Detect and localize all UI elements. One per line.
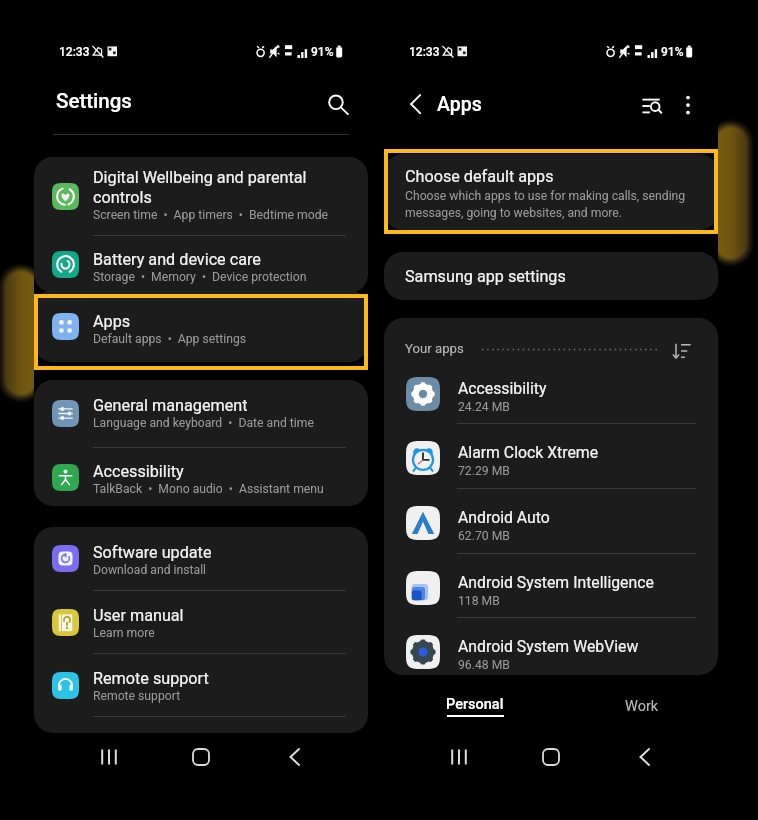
- button[interactable]: Android Auto: [384, 493, 718, 553]
- button[interactable]: Recents: [88, 736, 130, 778]
- staticText: 72.29 MB: [458, 464, 510, 478]
- staticText: Your apps: [405, 341, 464, 356]
- button[interactable]: Software update: [34, 527, 368, 590]
- button[interactable]: Samsung app settings: [384, 252, 718, 300]
- staticText: Battery and device care: [93, 250, 261, 269]
- button[interactable]: Sort: [670, 339, 694, 363]
- button[interactable]: User manual: [34, 591, 368, 653]
- staticText: 118 MB: [458, 594, 500, 608]
- button[interactable]: Alarm Clock Xtreme: [384, 428, 718, 488]
- staticText: Accessibility: [458, 379, 547, 398]
- staticText: 91%: [311, 45, 334, 59]
- staticText: 96.48 MB: [458, 658, 510, 672]
- staticText: Software update: [93, 543, 212, 562]
- staticText: 24.24 MB: [458, 400, 510, 414]
- button[interactable]: General management: [34, 380, 368, 447]
- staticText: 62.70 MB: [458, 529, 510, 543]
- staticText: Android Auto: [458, 508, 550, 527]
- button[interactable]: Back: [623, 736, 665, 778]
- button[interactable]: Back: [273, 736, 315, 778]
- staticText: Screen time • App timers • Bedtime mode: [93, 208, 329, 222]
- staticText: Choose which apps to use for making call…: [405, 189, 686, 220]
- staticText: Alarm Clock Xtreme: [458, 443, 599, 462]
- button[interactable]: Apps: [34, 298, 368, 355]
- button[interactable]: Choose default apps: [384, 154, 718, 230]
- button[interactable]: Android System WebView: [384, 622, 718, 675]
- staticText: Work: [625, 698, 659, 715]
- staticText: Default apps • App settings: [93, 332, 247, 346]
- staticText: User manual: [93, 606, 184, 625]
- button[interactable]: Search: [321, 88, 355, 122]
- button[interactable]: Accessibility: [384, 364, 718, 424]
- staticText: 12:33: [59, 45, 90, 59]
- staticText: Choose default apps: [405, 167, 554, 186]
- staticText: Remote support: [93, 669, 209, 688]
- staticText: Language and keyboard • Date and time: [93, 416, 314, 430]
- button[interactable]: Home: [180, 736, 222, 778]
- button[interactable]: Back: [400, 90, 430, 120]
- button[interactable]: Remote support: [34, 654, 368, 716]
- staticText: Remote support: [93, 689, 181, 703]
- staticText: Settings: [56, 89, 132, 113]
- staticText: Accessibility: [93, 462, 184, 481]
- button[interactable]: Search apps: [637, 90, 669, 122]
- button[interactable]: Android System Intelligence: [384, 558, 718, 618]
- staticText: TalkBack • Mono audio • Assistant menu: [93, 482, 324, 496]
- button[interactable]: Digital Wellbeing and parental controls: [34, 157, 368, 235]
- staticText: General management: [93, 396, 248, 415]
- staticText: Apps: [437, 93, 482, 116]
- button[interactable]: More options: [672, 90, 704, 122]
- staticText: Digital Wellbeing and parental controls: [93, 168, 307, 207]
- button[interactable]: Work: [558, 685, 725, 727]
- staticText: Storage • Memory • Device protection: [93, 270, 307, 284]
- button[interactable]: Battery and device care: [34, 236, 368, 293]
- button[interactable]: Accessibility: [34, 448, 368, 506]
- staticText: Learn more: [93, 626, 155, 640]
- button[interactable]: Home: [530, 736, 572, 778]
- button[interactable]: Recents: [438, 736, 480, 778]
- staticText: Apps: [93, 312, 131, 331]
- staticText: 91%: [661, 45, 684, 59]
- staticText: Android System Intelligence: [458, 573, 654, 592]
- staticText: Personal: [446, 696, 504, 713]
- staticText: Download and install: [93, 563, 207, 577]
- staticText: 12:33: [409, 45, 440, 59]
- staticText: Android System WebView: [458, 637, 639, 656]
- staticText: Samsung app settings: [405, 267, 566, 286]
- button[interactable]: Personal: [391, 685, 558, 727]
